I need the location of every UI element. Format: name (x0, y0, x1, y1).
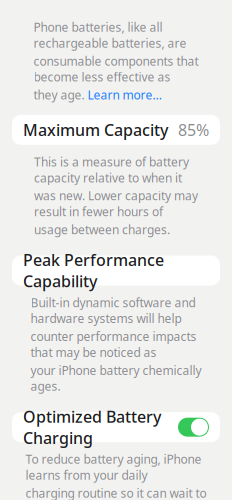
staticText: Built-in dynamic software and hardware s… (30, 294, 195, 326)
staticText: Learn more… (87, 87, 161, 103)
staticText: they age. (33, 87, 84, 103)
staticText: counter performance impacts that may be … (30, 328, 196, 360)
staticText: Optimized Battery Charging (23, 406, 161, 448)
staticText: Peak Performance Capability (23, 249, 164, 292)
button[interactable]: Peak Performance Capability (0, 255, 232, 285)
button[interactable]: Optimized Battery Charging (0, 412, 232, 442)
staticText: your iPhone battery chemically ages. (30, 362, 201, 394)
staticText: To reduce battery aging, iPhone learns f… (25, 451, 201, 483)
staticText: consumable components that become less e… (33, 53, 198, 85)
staticText: charging routine so it can wait to finis… (25, 485, 206, 500)
staticText: Maximum Capacity (23, 119, 168, 140)
staticText: This is a measure of battery capacity re… (34, 154, 189, 186)
button[interactable]: Maximum Capacity (0, 115, 232, 145)
staticText: Phone batteries, like all rechargeable b… (33, 19, 186, 51)
staticText: 85% (178, 119, 209, 140)
staticText: usage between charges. (34, 222, 170, 237)
staticText: was new. Lower capacity may result in fe… (34, 188, 198, 220)
button[interactable]: Learn more… (87, 87, 161, 103)
